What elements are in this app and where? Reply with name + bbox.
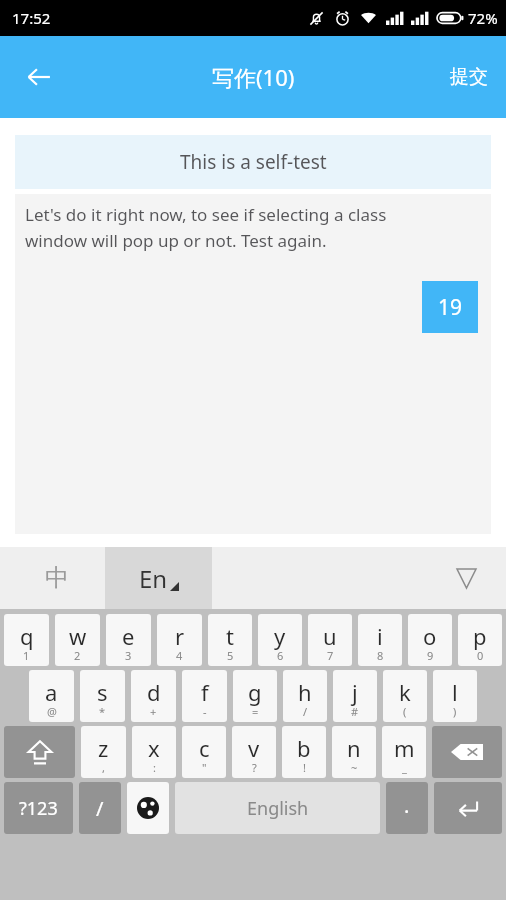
button[interactable]: s <box>80 670 125 722</box>
staticText: 1 <box>23 648 30 663</box>
button[interactable]: 提交 <box>450 65 488 89</box>
staticText: x <box>148 733 160 763</box>
button[interactable]: h <box>283 670 327 722</box>
button[interactable]: n <box>332 726 376 778</box>
staticText: 19 <box>438 293 463 322</box>
staticText: 6 <box>277 648 284 663</box>
staticText: / <box>96 795 104 822</box>
staticText: 8 <box>377 648 384 663</box>
staticText: En <box>139 562 168 595</box>
staticText: : <box>153 760 156 775</box>
staticText: e <box>122 621 135 651</box>
button[interactable]: Hide keyboard <box>448 560 484 596</box>
button[interactable]: g <box>233 670 277 722</box>
button[interactable]: o <box>408 614 452 666</box>
button[interactable]: x <box>132 726 176 778</box>
button[interactable]: m <box>382 726 426 778</box>
staticText: 9 <box>427 648 434 663</box>
staticText: b <box>297 733 311 763</box>
button[interactable]: a <box>29 670 74 722</box>
button[interactable]: Let's do it right now, to see if selecti… <box>15 194 491 534</box>
button[interactable]: v <box>232 726 276 778</box>
button[interactable]: j <box>333 670 377 722</box>
staticText: v <box>248 733 260 763</box>
staticText: 4 <box>176 648 183 663</box>
staticText: @ <box>47 704 57 719</box>
button[interactable]: ?123 <box>4 782 73 834</box>
button[interactable]: This is a self-test <box>15 135 491 189</box>
staticText: o <box>423 621 437 651</box>
staticText: 17:52 <box>12 8 51 28</box>
staticText: k <box>399 677 411 707</box>
button[interactable]: u <box>308 614 352 666</box>
staticText: - <box>203 704 207 719</box>
button[interactable]: z <box>81 726 126 778</box>
staticText: 0 <box>477 648 484 663</box>
button[interactable]: y <box>258 614 302 666</box>
staticText: u <box>323 621 337 651</box>
staticText: ! <box>303 760 306 775</box>
staticText: 72% <box>468 8 498 28</box>
staticText: l <box>452 677 458 707</box>
button[interactable]: e <box>106 614 151 666</box>
staticText: 5 <box>227 648 234 663</box>
staticText: g <box>248 677 262 707</box>
staticText: n <box>347 733 361 763</box>
button[interactable]: q <box>4 614 49 666</box>
staticText: 3 <box>125 648 132 663</box>
staticText: z <box>98 733 109 763</box>
staticText: + <box>150 704 157 719</box>
staticText: ~ <box>351 760 358 775</box>
staticText: i <box>377 621 383 651</box>
staticText: 中 <box>45 563 69 593</box>
staticText: p <box>473 621 487 651</box>
staticText: a <box>45 677 58 707</box>
staticText: s <box>97 677 108 707</box>
button[interactable]: w <box>55 614 100 666</box>
button[interactable]: i <box>358 614 402 666</box>
staticText: j <box>352 677 358 707</box>
button[interactable]: Change language <box>127 782 169 834</box>
staticText: m <box>394 733 415 763</box>
staticText: = <box>252 704 259 719</box>
button[interactable]: Backspace <box>432 726 502 778</box>
button[interactable]: t <box>208 614 252 666</box>
button[interactable]: . <box>386 782 428 834</box>
button[interactable]: l <box>433 670 477 722</box>
button[interactable]: Back <box>14 52 64 102</box>
staticText: This is a self-test <box>180 149 327 175</box>
staticText: ) <box>453 704 457 719</box>
staticText: y <box>274 621 286 651</box>
button[interactable]: Enter <box>434 782 502 834</box>
button[interactable]: English <box>175 782 380 834</box>
staticText: _ <box>402 760 407 775</box>
staticText: f <box>201 677 209 707</box>
staticText: t <box>226 621 234 651</box>
button[interactable]: c <box>182 726 226 778</box>
button[interactable]: d <box>131 670 176 722</box>
staticText: 提交 <box>450 65 488 89</box>
staticText: c <box>199 733 210 763</box>
staticText: ?123 <box>19 796 58 821</box>
button[interactable]: En <box>105 547 212 609</box>
button[interactable]: Shift <box>4 726 75 778</box>
staticText: # <box>351 704 359 719</box>
staticText: d <box>147 677 161 707</box>
staticText: h <box>298 677 312 707</box>
button[interactable]: r <box>157 614 202 666</box>
staticText: ? <box>252 760 257 775</box>
staticText: " <box>202 760 207 775</box>
staticText: ( <box>403 704 407 719</box>
staticText: English <box>247 796 309 821</box>
button[interactable]: f <box>182 670 227 722</box>
staticText: 7 <box>327 648 334 663</box>
button[interactable]: k <box>383 670 427 722</box>
button[interactable]: p <box>458 614 502 666</box>
staticText: / <box>303 704 308 719</box>
button[interactable]: Voice input <box>416 580 470 634</box>
button[interactable]: b <box>282 726 326 778</box>
button[interactable]: / <box>79 782 121 834</box>
button[interactable]: 中 <box>22 547 92 609</box>
staticText: r <box>175 621 185 651</box>
staticText: q <box>20 621 34 651</box>
